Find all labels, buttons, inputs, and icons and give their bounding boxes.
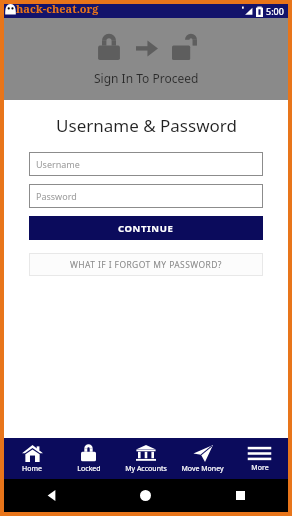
staticText: Password [36, 190, 77, 202]
button[interactable]: My Accounts [117, 438, 174, 479]
button[interactable]: Home [4, 438, 60, 479]
staticText: My Accounts [125, 464, 167, 474]
button[interactable]: Username [29, 152, 263, 176]
staticText: Locked [77, 464, 101, 474]
staticText: Username [36, 158, 80, 170]
staticText: CONTINUE [118, 222, 174, 235]
button[interactable]: Password [29, 184, 263, 208]
button[interactable]: Locked [60, 438, 117, 479]
button[interactable]: Recent apps [193, 479, 288, 512]
button[interactable]: Back [4, 479, 98, 512]
staticText: Move Money [181, 464, 224, 474]
staticText: Home [22, 464, 42, 474]
button[interactable]: CONTINUE [29, 216, 263, 240]
staticText: 5:00 [266, 5, 284, 17]
staticText: Sign In To Proceed [94, 70, 199, 86]
staticText: More [251, 463, 269, 473]
button[interactable]: More [231, 438, 288, 479]
button[interactable]: WHAT IF I FORGOT MY PASSWORD? [29, 253, 263, 276]
staticText: WHAT IF I FORGOT MY PASSWORD? [70, 259, 222, 271]
button[interactable]: Move Money [174, 438, 231, 479]
staticText: hack-cheat.org [16, 1, 99, 16]
staticText: Username & Password [56, 114, 237, 137]
button[interactable]: Home [98, 479, 193, 512]
